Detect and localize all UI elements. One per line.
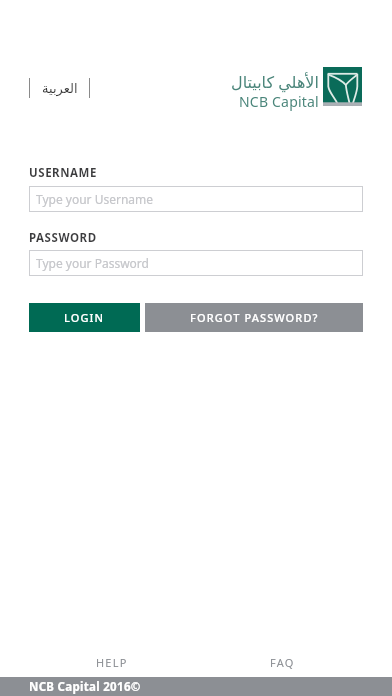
staticText: NCB Capital — [239, 92, 319, 111]
staticText: PASSWORD — [29, 230, 97, 246]
button[interactable]: FORGOT PASSWORD? — [145, 303, 363, 332]
button[interactable]: HELP — [26, 650, 197, 674]
staticText: FAQ — [270, 655, 295, 670]
staticText: FORGOT PASSWORD? — [190, 310, 319, 325]
button[interactable]: العربية — [30, 78, 89, 98]
staticText: USERNAME — [29, 165, 98, 181]
button[interactable]: Type your Username — [29, 186, 363, 212]
other: NCB Capital logo — [323, 67, 362, 106]
staticText: NCB Capital 2016© — [29, 679, 141, 695]
staticText: LOGIN — [64, 310, 105, 325]
staticText: Type your Password — [36, 255, 149, 271]
staticText: الأهلي كابيتال — [231, 71, 319, 93]
button[interactable]: FAQ — [197, 650, 368, 674]
staticText: HELP — [96, 655, 128, 670]
button[interactable]: Type your Password — [29, 250, 363, 276]
staticText: العربية — [42, 81, 78, 96]
staticText: Type your Username — [36, 191, 154, 207]
button[interactable]: LOGIN — [29, 303, 140, 332]
